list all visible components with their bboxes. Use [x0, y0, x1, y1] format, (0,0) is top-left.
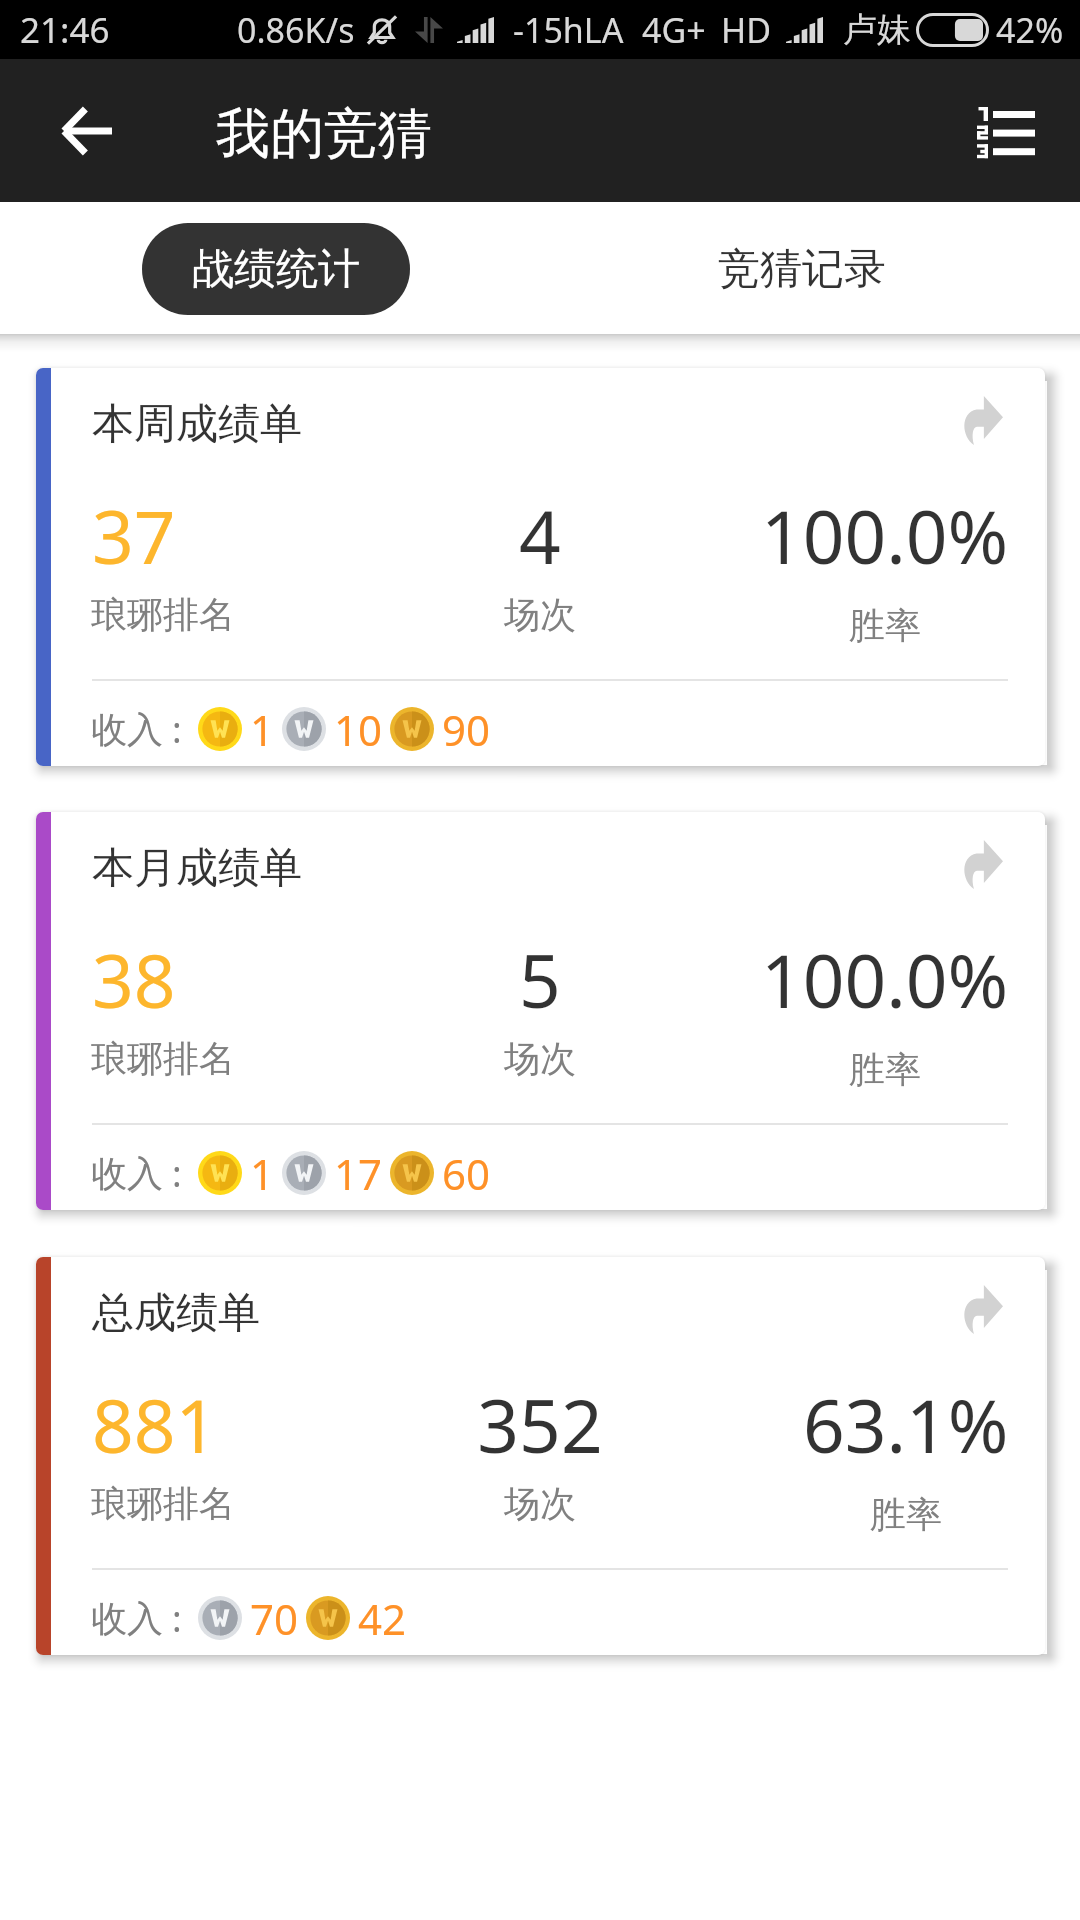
staticText: 4	[519, 486, 561, 585]
staticText: 100.0%	[761, 486, 1009, 585]
staticText: 我的竞猜	[216, 100, 432, 168]
staticText: :	[172, 1594, 182, 1643]
staticText: 战绩统计	[192, 243, 360, 296]
staticText: 100.0%	[761, 930, 1009, 1029]
button[interactable]: 竞猜记录	[540, 202, 1080, 334]
button[interactable]: Share	[950, 833, 1012, 895]
staticText: 1	[250, 1145, 275, 1202]
staticText: 1	[250, 701, 275, 758]
staticText: 42%	[996, 7, 1064, 53]
staticText: 卢妹	[843, 8, 911, 51]
staticText: 收入	[91, 1596, 163, 1641]
staticText: 60	[442, 1145, 491, 1202]
button[interactable]: 战绩统计	[142, 223, 410, 315]
staticText: 17	[334, 1145, 383, 1202]
button[interactable]: 本周成绩单	[36, 368, 1045, 766]
staticText: :	[172, 1149, 182, 1198]
staticText: 场次	[504, 1036, 576, 1081]
staticText: 21:46	[20, 6, 110, 54]
staticText: 胜率	[849, 603, 921, 648]
staticText: 42	[358, 1590, 407, 1647]
staticText: 37	[92, 486, 176, 585]
staticText: 63.1%	[803, 1375, 1009, 1474]
staticText: 90	[442, 701, 491, 758]
staticText: 70	[250, 1590, 299, 1647]
staticText: 352	[477, 1375, 603, 1474]
staticText: 场次	[504, 1481, 576, 1526]
staticText: 胜率	[849, 1047, 921, 1092]
staticText: 胜率	[870, 1492, 942, 1537]
staticText: 5	[519, 930, 561, 1029]
button[interactable]: 本月成绩单	[36, 812, 1045, 1210]
staticText: 10	[334, 701, 383, 758]
staticText: 场次	[504, 592, 576, 637]
staticText: 38	[92, 930, 176, 1029]
staticText: 琅琊排名	[91, 1481, 235, 1526]
button[interactable]: Share	[950, 389, 1012, 451]
staticText: 总成绩单	[92, 1287, 260, 1340]
staticText: 本月成绩单	[92, 842, 302, 895]
staticText: 收入	[91, 707, 163, 752]
button[interactable]: 总成绩单	[36, 1257, 1045, 1655]
button[interactable]: Rules	[952, 77, 1060, 185]
button[interactable]: Back	[33, 77, 141, 185]
staticText: 本周成绩单	[92, 398, 302, 451]
staticText: -15hLA	[513, 7, 624, 53]
staticText: 881	[92, 1375, 218, 1474]
staticText: 琅琊排名	[91, 1036, 235, 1081]
staticText: 竞猜记录	[718, 243, 886, 296]
button[interactable]: Share	[950, 1278, 1012, 1340]
staticText: :	[172, 705, 182, 754]
staticText: HD	[721, 7, 772, 53]
staticText: 琅琊排名	[91, 592, 235, 637]
staticText: 4G+	[642, 7, 706, 53]
staticText: 0.86K/s	[237, 7, 355, 53]
staticText: 收入	[91, 1151, 163, 1196]
